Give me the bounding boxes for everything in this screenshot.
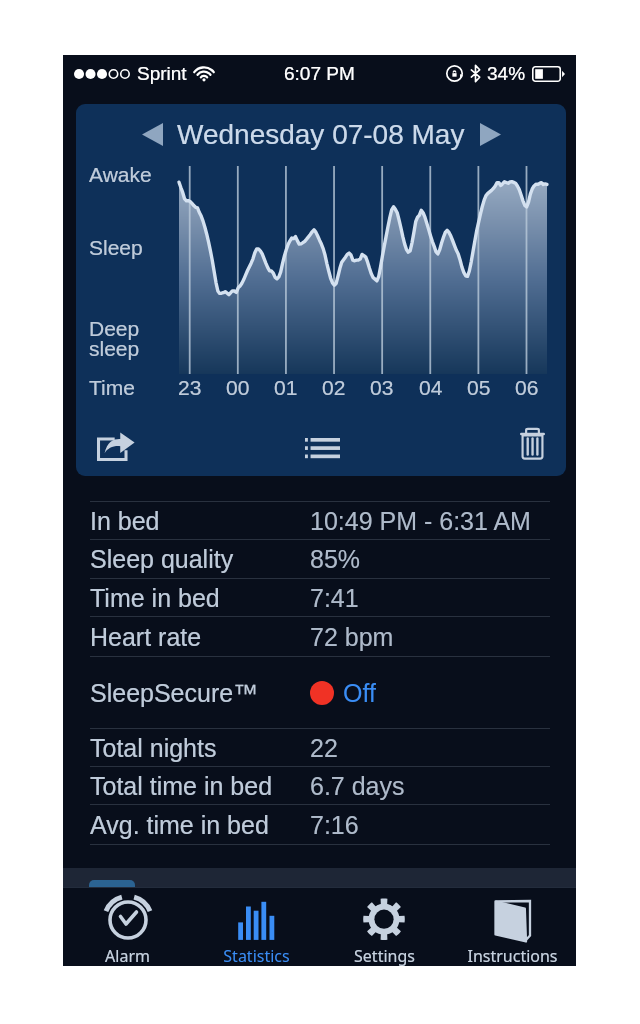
staticText: Off [343, 679, 376, 707]
staticText: 05 [467, 376, 491, 399]
staticText: 06 [515, 376, 539, 399]
button[interactable]: Statistics [192, 888, 320, 966]
staticText: Alarm [105, 945, 150, 967]
staticText: 10:49 PM - 6:31 AM [310, 507, 531, 535]
staticText: 85% [310, 545, 361, 573]
staticText: sleep [89, 337, 140, 360]
staticText: Sleep quality [90, 545, 234, 573]
button[interactable]: Share [76, 420, 166, 472]
staticText: In bed [90, 507, 160, 535]
button[interactable]: Delete [488, 420, 565, 472]
staticText: 23 [178, 376, 202, 399]
staticText: Settings [354, 945, 415, 967]
button[interactable]: SleepSecure™ [90, 657, 550, 728]
staticText: 34% [487, 63, 526, 84]
staticText: Deep [89, 317, 140, 340]
staticText: Time [89, 376, 135, 399]
staticText: Statistics [223, 945, 290, 967]
staticText: 7:16 [310, 811, 359, 839]
staticText: Time in bed [90, 584, 220, 612]
staticText: 6.7 days [310, 772, 405, 800]
button[interactable]: Instructions [448, 888, 576, 966]
button[interactable]: Heart rate [90, 617, 550, 656]
staticText: Total nights [90, 734, 217, 762]
staticText: Wednesday 07-08 May [177, 119, 465, 150]
staticText: Sprint [137, 63, 187, 84]
staticText: 03 [370, 376, 394, 399]
staticText: 72 bpm [310, 623, 394, 651]
button[interactable]: Previous day [130, 112, 174, 156]
staticText: Total time in bed [90, 772, 273, 800]
button[interactable]: Next day [468, 112, 512, 156]
button[interactable]: Avg. time in bed [90, 805, 550, 844]
staticText: Instructions [467, 945, 558, 967]
staticText: 6:07 PM [284, 63, 355, 84]
button[interactable]: Time in bed [90, 579, 550, 616]
staticText: Awake [89, 163, 152, 186]
staticText: SleepSecure™ [90, 679, 259, 707]
button[interactable]: Settings [320, 888, 448, 966]
staticText: Heart rate [90, 623, 202, 651]
staticText: 7:41 [310, 584, 359, 612]
button[interactable]: Total nights [90, 729, 550, 766]
staticText: Sleep [89, 236, 143, 259]
staticText: 04 [419, 376, 443, 399]
button[interactable]: List [284, 420, 364, 472]
button[interactable]: Total time in bed [90, 767, 550, 804]
staticText: 01 [274, 376, 298, 399]
staticText: Avg. time in bed [90, 811, 269, 839]
staticText: 02 [322, 376, 346, 399]
button[interactable]: Sleep quality [90, 540, 550, 578]
staticText: 22 [310, 734, 338, 762]
staticText: 00 [226, 376, 250, 399]
button[interactable]: Alarm [63, 888, 192, 966]
button[interactable]: In bed [90, 502, 550, 539]
